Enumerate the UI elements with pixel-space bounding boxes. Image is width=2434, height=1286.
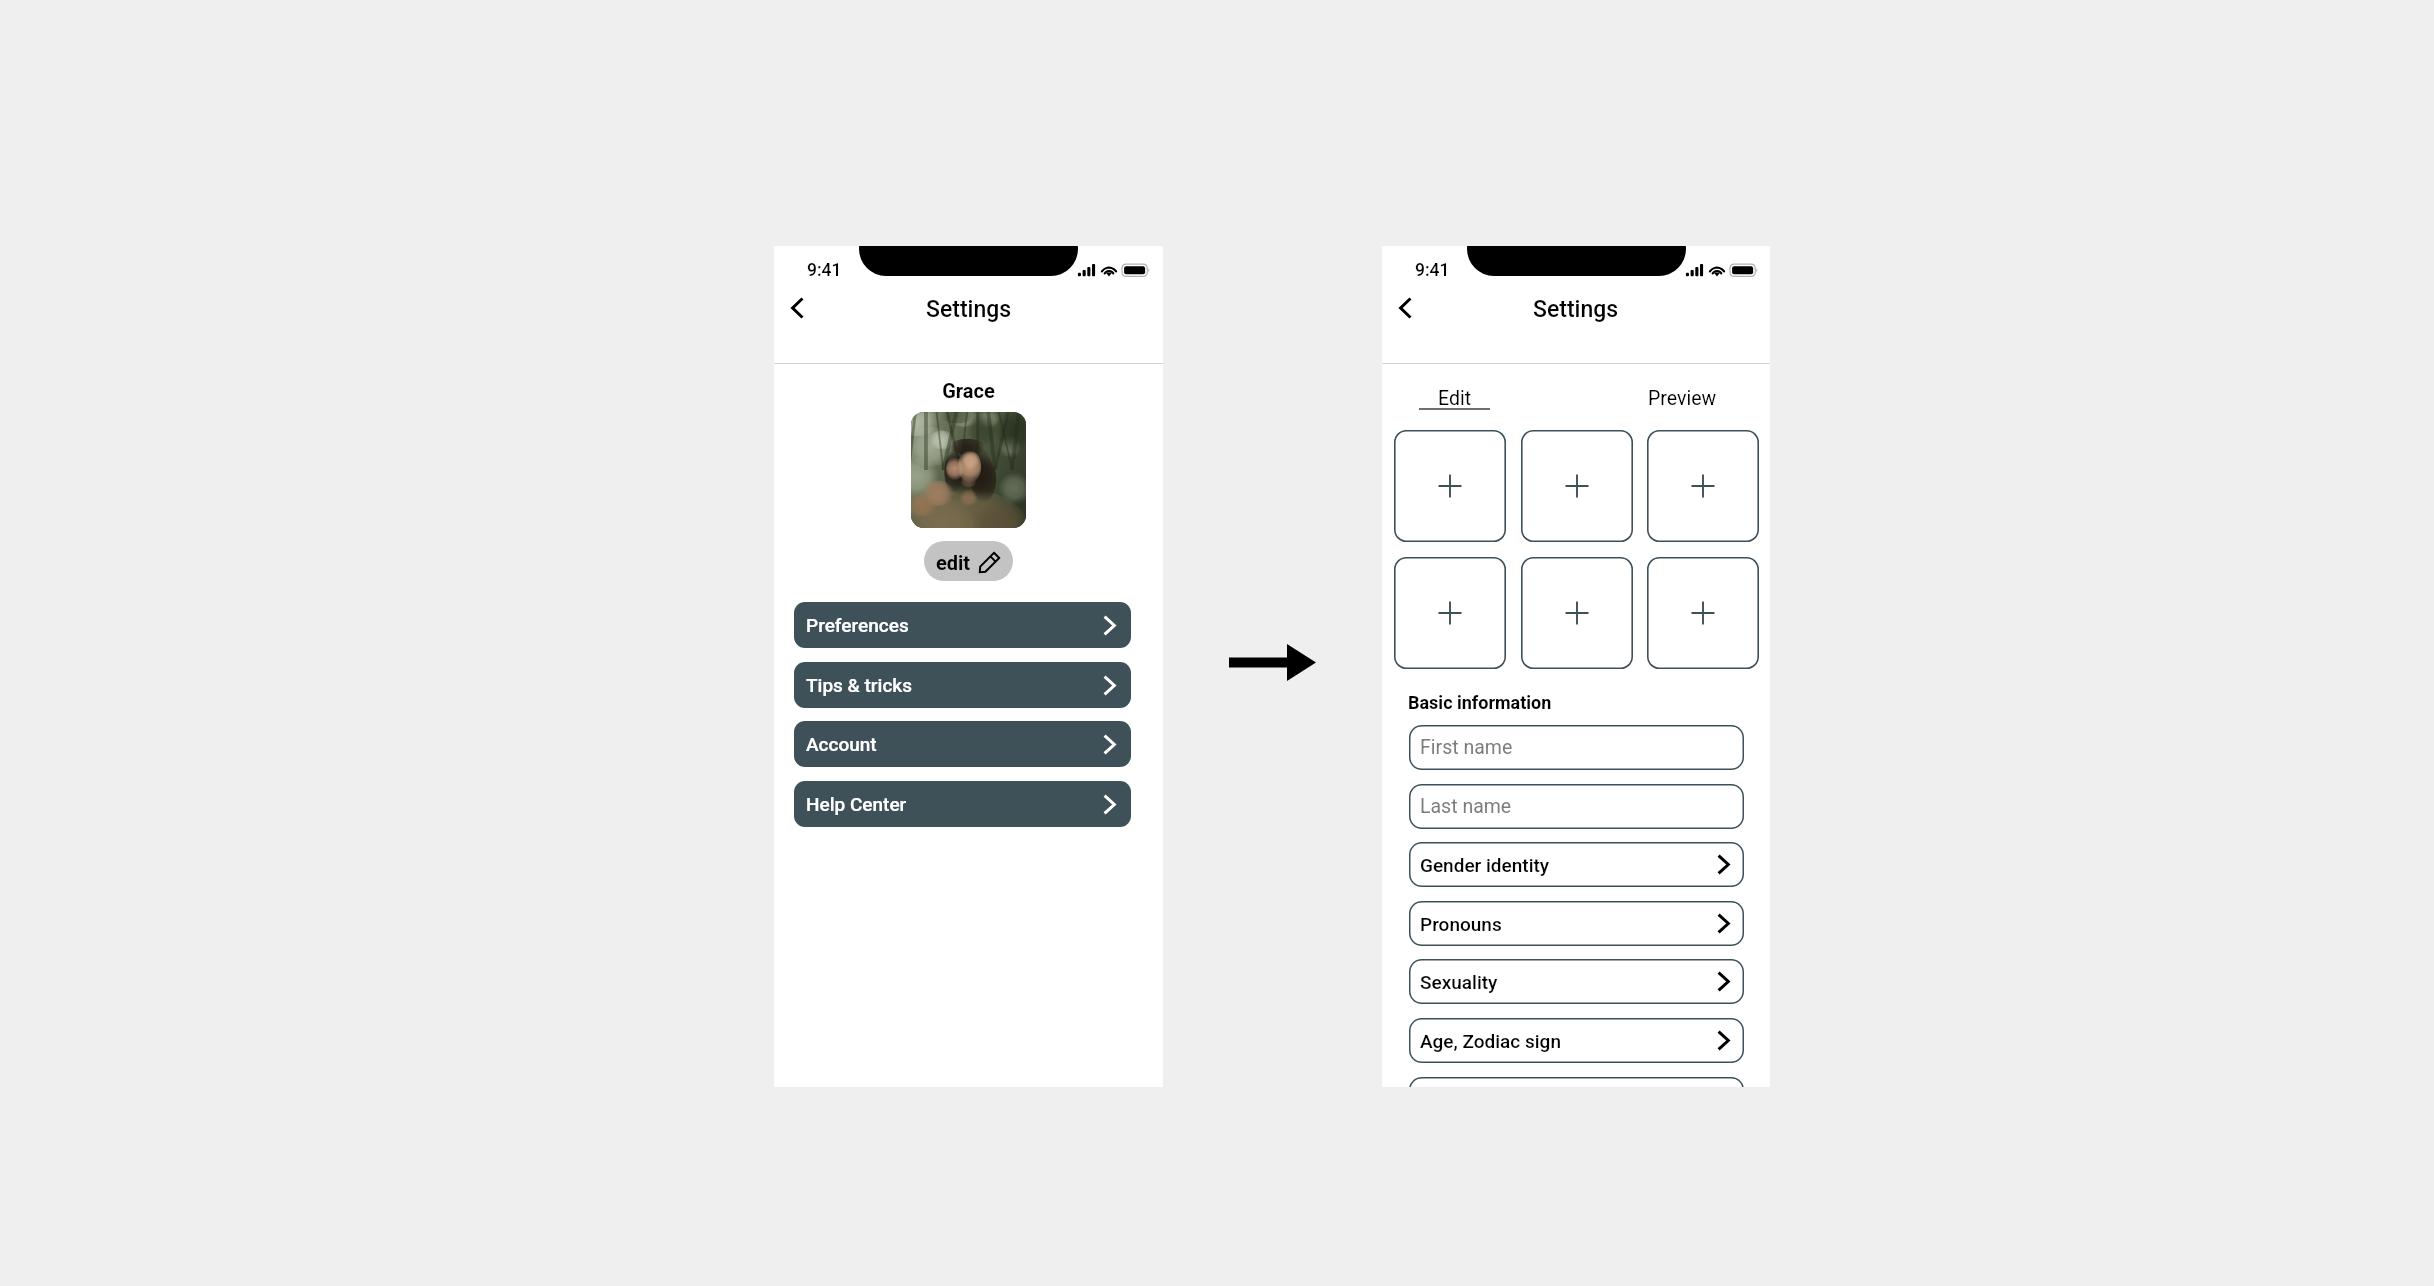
button[interactable]: Height <box>1409 1077 1744 1087</box>
staticText: Age, Zodiac sign <box>1420 1030 1561 1052</box>
button[interactable]: Tips & tricks <box>794 662 1131 708</box>
button[interactable]: Add photo <box>1521 557 1633 669</box>
staticText: 9:41 <box>1415 260 1450 281</box>
staticText: Basic information <box>1408 692 1552 713</box>
button[interactable]: Last name <box>1409 784 1744 829</box>
button[interactable]: First name <box>1409 725 1744 770</box>
staticText: Edit <box>1438 387 1472 410</box>
staticText: Gender identity <box>1420 854 1550 876</box>
button[interactable]: Back <box>1387 290 1423 326</box>
staticText: Pronouns <box>1420 913 1502 935</box>
button[interactable]: Account <box>794 721 1131 767</box>
button[interactable]: Gender identity <box>1409 842 1744 887</box>
button[interactable]: Add photo <box>1647 557 1759 669</box>
staticText: Preview <box>1648 387 1717 410</box>
staticText: Sexuality <box>1420 971 1498 993</box>
button[interactable]: Add photo <box>1394 557 1506 669</box>
staticText: Settings <box>1533 296 1619 323</box>
staticText: Help Center <box>806 793 907 815</box>
button[interactable]: edit <box>924 541 1013 581</box>
button[interactable]: Preview <box>1637 381 1727 413</box>
button[interactable]: Sexuality <box>1409 959 1744 1004</box>
staticText: Account <box>806 733 877 755</box>
button[interactable]: Pronouns <box>1409 901 1744 946</box>
button[interactable]: Back <box>779 290 815 326</box>
button[interactable]: Edit <box>1419 381 1490 413</box>
staticText: First name <box>1420 736 1513 759</box>
button[interactable]: Help Center <box>794 781 1131 827</box>
staticText: Preferences <box>806 614 909 636</box>
staticText: Tips & tricks <box>806 674 912 696</box>
button[interactable]: Add photo <box>1394 430 1506 542</box>
button[interactable]: Add photo <box>1521 430 1633 542</box>
staticText: Last name <box>1420 795 1512 818</box>
staticText: Settings <box>926 296 1012 323</box>
staticText: Grace <box>774 379 1163 402</box>
button[interactable]: Preferences <box>794 602 1131 648</box>
button[interactable]: Add photo <box>1647 430 1759 542</box>
button[interactable]: Age, Zodiac sign <box>1409 1018 1744 1063</box>
staticText: 9:41 <box>807 260 842 281</box>
staticText: edit <box>936 551 971 574</box>
